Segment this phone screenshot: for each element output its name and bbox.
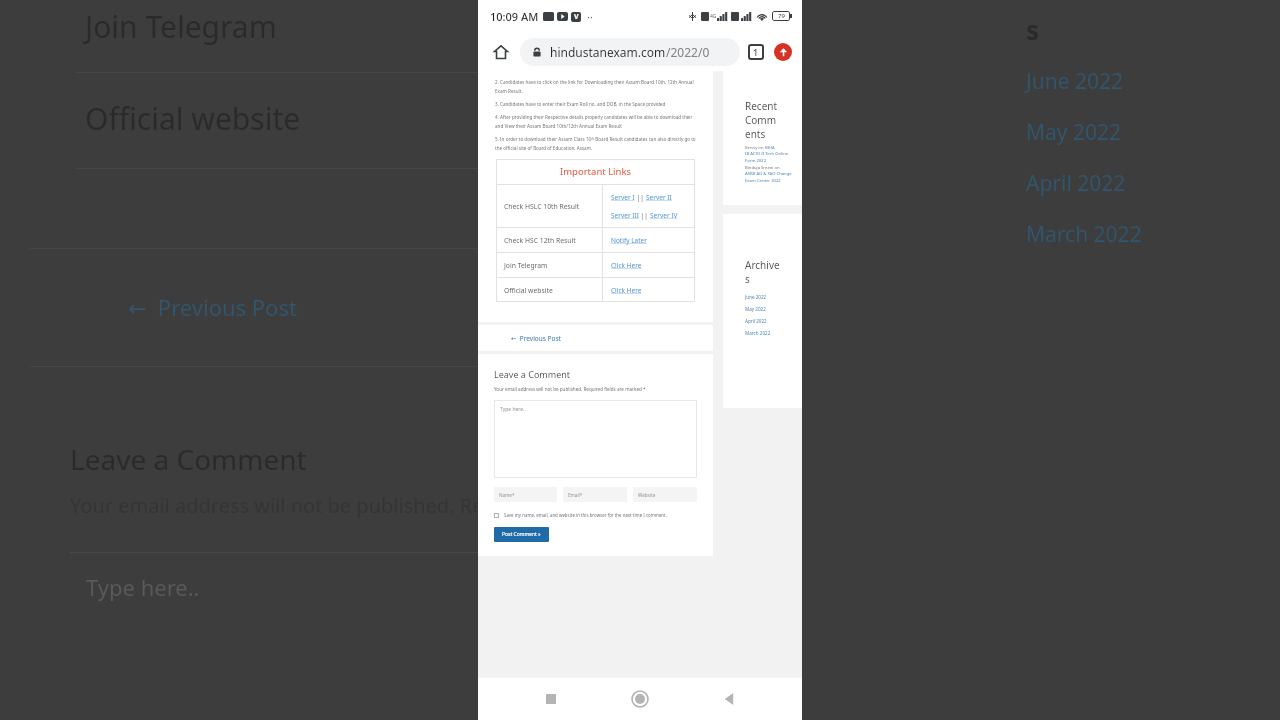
button[interactable]: Name* xyxy=(494,487,557,502)
staticText: March 2022 xyxy=(1026,220,1142,249)
staticText: June 2022 xyxy=(1026,67,1124,96)
button[interactable]: Home xyxy=(488,39,514,65)
button[interactable]: Post Comment » xyxy=(494,527,549,542)
staticText: Type here.. xyxy=(500,406,526,413)
button[interactable]: June 2022 xyxy=(745,291,767,303)
button[interactable]: March 2022 xyxy=(745,327,771,339)
staticText: Join Telegram xyxy=(504,261,548,270)
staticText: Recent xyxy=(745,99,778,113)
button[interactable]: Server IV xyxy=(650,211,678,220)
button[interactable]: Server II xyxy=(646,193,672,202)
staticText: Join Telegram xyxy=(85,6,277,47)
button[interactable]: hindustanexam.com xyxy=(520,38,740,66)
button[interactable]: April 2022 xyxy=(745,315,767,327)
staticText: Your email address will not be published… xyxy=(494,386,646,392)
staticText: ← Previous Post xyxy=(128,292,297,322)
button[interactable]: Click Here xyxy=(611,261,642,270)
staticText: Type here.. xyxy=(86,572,200,602)
staticText: 10:09 AM xyxy=(490,9,539,24)
staticText: 4. After providing their Respective deta… xyxy=(495,114,696,129)
staticText: 5. In order to download their Assam Clas… xyxy=(495,136,696,151)
staticText: ents xyxy=(745,127,766,141)
button[interactable]: Back xyxy=(714,684,744,714)
staticText: 3. Candidates have to enter their Exam R… xyxy=(495,101,666,107)
button[interactable]: Click Here xyxy=(611,286,642,295)
staticText: Check HSC 12th Result xyxy=(504,236,576,245)
staticText: || xyxy=(639,211,650,220)
staticText: /2022/0 xyxy=(666,44,710,60)
staticText: 2. Candidates have to click on the link … xyxy=(495,79,696,94)
staticText: Email* xyxy=(568,492,583,498)
staticText: Comm xyxy=(745,113,777,127)
staticText: Name* xyxy=(499,492,515,498)
staticText: Leave a Comment xyxy=(494,368,571,380)
button[interactable]: Recent apps xyxy=(536,684,566,714)
staticText: hindustanexam.com xyxy=(550,44,666,60)
staticText: Official website xyxy=(504,286,553,295)
staticText: May 2022 xyxy=(1026,118,1122,147)
staticText: Website xyxy=(638,492,656,498)
button[interactable]: Server I xyxy=(611,193,635,202)
staticText: 79 xyxy=(778,12,785,20)
staticText: Official website xyxy=(85,98,301,139)
staticText: || xyxy=(635,193,646,202)
button[interactable]: May 2022 xyxy=(745,303,766,315)
button[interactable]: Website xyxy=(633,487,697,502)
staticText: Save my name, email, and website in this… xyxy=(504,512,667,518)
button[interactable]: Server III xyxy=(611,211,639,220)
staticText: Leave a Comment xyxy=(70,440,307,478)
button[interactable]: Tabs xyxy=(748,44,764,60)
button[interactable]: MHA xyxy=(765,145,775,151)
button[interactable]: Email* xyxy=(563,487,627,502)
button[interactable]: Notify Later xyxy=(611,236,647,245)
staticText: Check HSLC 10th Result xyxy=(504,202,580,211)
staticText: Binduja Sreeni on xyxy=(745,165,781,171)
staticText: s xyxy=(1026,12,1040,47)
staticText: Kenny on xyxy=(745,145,765,151)
staticText: April 2022 xyxy=(1026,169,1126,198)
staticText: Post Comment » xyxy=(502,531,541,538)
button[interactable]: Scroll to top xyxy=(774,43,792,61)
staticText: ·· xyxy=(587,9,593,24)
staticText: Important Links xyxy=(560,165,632,178)
button[interactable]: Save my name, email, and website in this… xyxy=(494,512,697,518)
staticText: 4G xyxy=(710,13,717,20)
staticText: Archive xyxy=(745,258,780,272)
staticText: s xyxy=(745,272,750,286)
staticText: Your email address will not be published… xyxy=(70,492,509,519)
button[interactable]: IB ACIO II Tech Online Form 2022 xyxy=(745,151,796,163)
button[interactable]: ← Previous Post xyxy=(511,334,561,343)
button[interactable]: ASRB AO & FAO Change Exam Center 2022 xyxy=(745,171,796,183)
staticText: 1 xyxy=(753,46,759,58)
staticText: V xyxy=(574,12,579,22)
button[interactable]: Home xyxy=(625,684,655,714)
button[interactable]: Type here.. xyxy=(494,400,697,478)
